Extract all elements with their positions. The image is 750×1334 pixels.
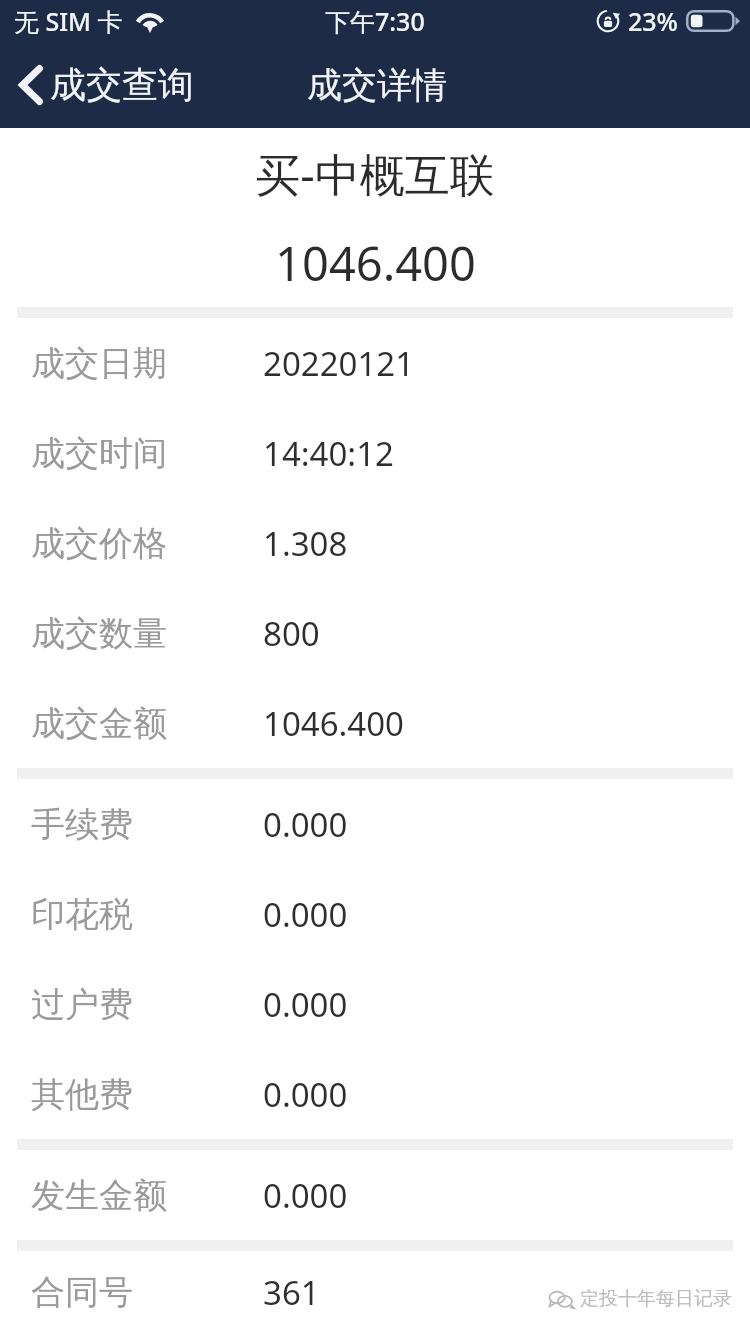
staticText: 成交金额 (31, 702, 263, 745)
staticText: 20220121 (263, 341, 415, 386)
staticText: 23% (628, 4, 678, 38)
button[interactable]: 其他费 (0, 1049, 750, 1139)
button[interactable]: Back (0, 62, 208, 107)
staticText: 成交日期 (31, 342, 263, 385)
button[interactable]: 合同号 (0, 1251, 750, 1334)
staticText: 合同号 (31, 1271, 263, 1314)
button[interactable]: 成交价格 (0, 498, 750, 588)
button[interactable]: 过户费 (0, 959, 750, 1049)
staticText: 361 (263, 1270, 320, 1315)
staticText: 印花税 (31, 893, 263, 936)
staticText: 1046.400 (263, 701, 404, 746)
staticText: 1046.400 (275, 231, 476, 295)
other: Back (19, 65, 43, 105)
staticText: 成交详情 (307, 63, 447, 107)
staticText: 0.000 (263, 892, 348, 937)
button[interactable]: 印花税 (0, 869, 750, 959)
button[interactable]: 成交时间 (0, 408, 750, 498)
staticText: 成交查询 (50, 62, 194, 107)
staticText: 0.000 (263, 982, 348, 1027)
button[interactable]: 成交日期 (0, 318, 750, 408)
button[interactable]: 成交金额 (0, 678, 750, 768)
staticText: 1.308 (263, 521, 348, 566)
staticText: 其他费 (31, 1073, 263, 1116)
staticText: 过户费 (31, 983, 263, 1026)
button[interactable]: 手续费 (0, 779, 750, 869)
staticText: 下午7:30 (325, 4, 425, 38)
staticText: 0.000 (263, 1072, 348, 1117)
staticText: 成交数量 (31, 612, 263, 655)
staticText: 买-中概互联 (255, 143, 495, 204)
staticText: 手续费 (31, 803, 263, 846)
staticText: 0.000 (263, 1173, 348, 1218)
staticText: 成交时间 (31, 432, 263, 475)
staticText: 无 SIM 卡 (14, 4, 123, 38)
button[interactable]: 发生金额 (0, 1150, 750, 1240)
button[interactable]: 成交数量 (0, 588, 750, 678)
staticText: 800 (263, 611, 320, 656)
staticText: 成交价格 (31, 522, 263, 565)
staticText: 定投十年每日记录 (580, 1287, 732, 1311)
staticText: 14:40:12 (263, 431, 394, 476)
staticText: 发生金额 (31, 1174, 263, 1217)
staticText: 0.000 (263, 802, 348, 847)
